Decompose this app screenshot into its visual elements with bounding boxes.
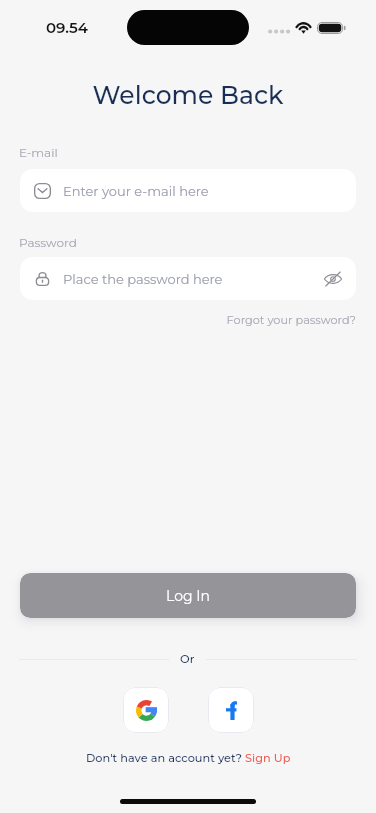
button[interactable]: Log In bbox=[20, 573, 356, 618]
staticText: Password bbox=[19, 235, 77, 250]
staticText: Place the password here bbox=[63, 271, 322, 287]
button[interactable]: Sign in with Facebook bbox=[208, 687, 254, 733]
staticText: Don't have an account yet? bbox=[86, 751, 245, 765]
button[interactable]: Place the password here bbox=[20, 257, 356, 300]
button[interactable]: Sign in with Google bbox=[123, 687, 169, 733]
staticText: Welcome Back bbox=[0, 80, 376, 110]
staticText: 09.54 bbox=[46, 18, 88, 36]
staticText: Log In bbox=[166, 587, 210, 604]
button[interactable]: Forgot your password? bbox=[0, 313, 376, 327]
button[interactable]: Show password bbox=[322, 268, 344, 290]
staticText: Or bbox=[180, 652, 195, 666]
button[interactable]: Sign Up bbox=[245, 751, 291, 765]
staticText: Enter your e-mail here bbox=[63, 183, 344, 199]
button[interactable]: Enter your e-mail here bbox=[20, 169, 356, 212]
staticText: E-mail bbox=[19, 145, 58, 160]
